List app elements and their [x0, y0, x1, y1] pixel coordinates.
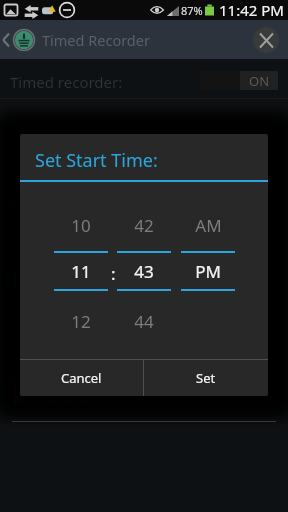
button[interactable]: Start Date, Time: [12, 197, 153, 222]
staticText: Cancel [61, 369, 102, 387]
button[interactable]: End Date, Time: [12, 269, 145, 294]
staticText: : [111, 262, 116, 285]
staticText: Set [196, 369, 216, 387]
staticText: PM [195, 260, 221, 282]
button[interactable]: Cancel [20, 360, 143, 396]
other: Back [1, 32, 11, 48]
staticText: Timed recorder: [10, 72, 123, 92]
button[interactable]: 11 [54, 260, 108, 282]
button[interactable]: Start Date, Time: [12, 368, 153, 393]
staticText: 87% [181, 3, 203, 18]
staticText: AM [195, 214, 222, 236]
button[interactable]: Back [0, 20, 288, 59]
button[interactable]: Timed recorder switch [200, 71, 278, 90]
button[interactable]: End Date, Time: [12, 383, 145, 408]
staticText: 11:42 PM [219, 0, 284, 20]
button[interactable]: 42 [117, 214, 171, 236]
button[interactable]: AM [181, 214, 235, 236]
staticText: 42 [134, 214, 154, 236]
staticText: Timed Recorder [42, 30, 150, 50]
staticText: 12 [71, 310, 91, 332]
button[interactable]: Set [144, 360, 268, 396]
staticText: 10 [71, 214, 91, 236]
button[interactable]: 43 [117, 260, 171, 282]
staticText: 11 [71, 260, 91, 282]
staticText: 44 [134, 310, 154, 332]
button[interactable]: 44 [117, 310, 171, 332]
button[interactable]: 12 [54, 310, 108, 332]
staticText: ON [249, 72, 270, 90]
staticText: 43 [134, 260, 154, 282]
button[interactable]: Close [253, 27, 279, 53]
button[interactable]: PM [181, 260, 235, 282]
button[interactable]: 10 [54, 214, 108, 236]
staticText: Set Start Time: [35, 148, 158, 173]
